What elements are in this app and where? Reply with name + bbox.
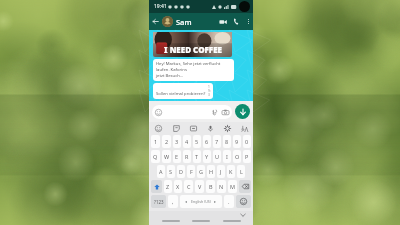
button[interactable]: Emoji (149, 122, 167, 135)
staticText: I NEED COFFEE (164, 44, 222, 55)
button[interactable]: Sollen vielmal probieren? (153, 83, 213, 99)
button[interactable]: 3 (173, 135, 181, 148)
staticText: O (235, 153, 240, 160)
staticText: Hey! Markus, Sehe jetzt verflucht laufen… (156, 61, 224, 73)
button[interactable]: 0 (243, 135, 251, 148)
staticText: N (219, 183, 224, 190)
staticText: D (179, 168, 184, 175)
button[interactable]: Stickers (167, 122, 185, 135)
button[interactable]: . (224, 195, 234, 208)
button[interactable]: More options (243, 13, 253, 30)
staticText: English (US) (191, 199, 211, 204)
button[interactable]: Settings (219, 122, 236, 135)
button[interactable]: Shift (151, 180, 162, 193)
button[interactable]: C (184, 180, 193, 193)
button[interactable]: T (193, 150, 201, 163)
button[interactable]: Navigation (162, 220, 180, 222)
button[interactable]: M (228, 180, 237, 193)
button[interactable]: N (217, 180, 226, 193)
staticText: P (245, 153, 249, 160)
button[interactable]: P (243, 150, 251, 163)
staticText: 4 (185, 138, 189, 145)
button[interactable]: ◂ (180, 195, 222, 208)
button[interactable]: ?123 (151, 195, 166, 208)
button[interactable]: Q (151, 150, 160, 163)
button[interactable]: W (162, 150, 171, 163)
staticText: 8 (225, 138, 229, 145)
button[interactable]: Hide keyboard (239, 211, 247, 219)
button[interactable]: Y (203, 150, 211, 163)
staticText: 0 (245, 138, 249, 145)
staticText: L (240, 168, 243, 175)
staticText: I (226, 153, 228, 160)
button[interactable]: Voice input (202, 122, 219, 135)
button[interactable]: H (207, 165, 215, 178)
button[interactable]: O (233, 150, 241, 163)
button[interactable]: Hey! Markus, Sehe jetzt verflucht laufen… (153, 59, 234, 81)
button[interactable]: 6 (203, 135, 211, 148)
button[interactable]: Voice call (230, 13, 243, 30)
button[interactable]: Video call (216, 13, 230, 30)
button[interactable]: 4 (183, 135, 191, 148)
staticText: 3 (175, 138, 179, 145)
button[interactable]: Contact photo (162, 16, 173, 27)
button[interactable]: Emoji (236, 195, 251, 208)
staticText: T (195, 153, 199, 160)
button[interactable]: 1 (151, 135, 160, 148)
staticText: Z (166, 183, 170, 190)
button[interactable]: Z (164, 180, 172, 193)
button[interactable]: Backspace (239, 180, 251, 193)
staticText: Q (153, 153, 158, 160)
button[interactable]: F (187, 165, 195, 178)
button[interactable]: J (217, 165, 225, 178)
staticText: Sam (176, 17, 192, 27)
button[interactable]: V (195, 180, 204, 193)
button[interactable]: B (206, 180, 215, 193)
button[interactable]: Back (149, 13, 162, 30)
button[interactable]: S (167, 165, 175, 178)
staticText: 19:37 (208, 85, 211, 97)
staticText: G (199, 168, 204, 175)
button[interactable]: Navigation (192, 220, 210, 222)
button[interactable]: 9 (233, 135, 241, 148)
button[interactable]: I (223, 150, 231, 163)
staticText: W (164, 153, 170, 160)
button[interactable]: R (183, 150, 191, 163)
button[interactable]: L (237, 165, 245, 178)
staticText: F (190, 168, 193, 175)
button[interactable]: Translate (236, 122, 253, 135)
staticText: S (169, 168, 173, 175)
button[interactable]: X (174, 180, 182, 193)
staticText: 7 (215, 138, 219, 145)
button[interactable]: 7 (213, 135, 221, 148)
staticText: Sollen vielmal probieren? (156, 91, 206, 97)
staticText: Y (205, 153, 209, 160)
staticText: K (229, 168, 233, 175)
staticText: 19:41 (154, 3, 167, 10)
button[interactable]: A (157, 165, 165, 178)
button[interactable]: Sam (176, 13, 216, 30)
button[interactable]: 5 (193, 135, 201, 148)
staticText: ◂ (185, 199, 188, 204)
button[interactable]: G (197, 165, 205, 178)
staticText: R (185, 153, 189, 160)
button[interactable]: K (227, 165, 235, 178)
button[interactable]: D (177, 165, 185, 178)
staticText: M (230, 183, 235, 190)
button[interactable] (152, 105, 232, 119)
staticText: 6 (205, 138, 209, 145)
button[interactable]: , (168, 195, 178, 208)
button[interactable]: U (213, 150, 221, 163)
button[interactable]: GIF (185, 122, 202, 135)
button[interactable]: 2 (162, 135, 171, 148)
staticText: ▸ (214, 199, 217, 204)
button[interactable]: Send voice message (235, 104, 250, 119)
staticText: 2 (165, 138, 169, 145)
staticText: X (176, 183, 180, 190)
staticText: 9 (235, 138, 239, 145)
button[interactable]: I NEED COFFEE (153, 32, 232, 57)
button[interactable]: Navigation (223, 220, 241, 222)
button[interactable]: 8 (223, 135, 231, 148)
staticText: J (220, 168, 222, 175)
button[interactable]: E (173, 150, 181, 163)
